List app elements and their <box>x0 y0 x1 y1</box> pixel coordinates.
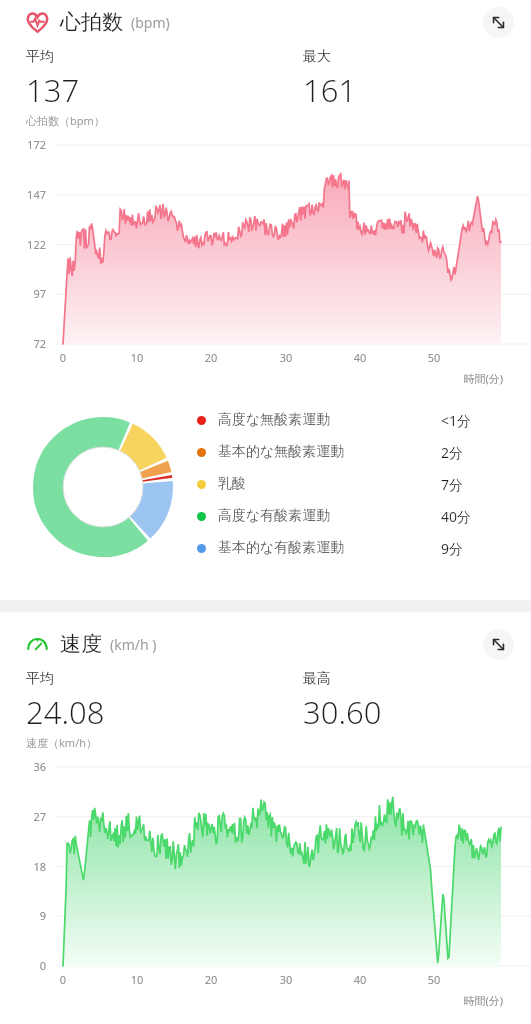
staticText: 30 <box>273 350 299 365</box>
staticText: 0 <box>50 350 76 365</box>
button[interactable]: 高度な無酸素運動 <box>197 404 497 436</box>
staticText: 時間(分) <box>0 993 503 1008</box>
staticText: 72 <box>0 336 46 351</box>
staticText: 基本的な無酸素運動 <box>218 443 345 461</box>
staticText: 30.60 <box>303 691 382 733</box>
staticText: 9分 <box>441 539 497 558</box>
button[interactable]: 基本的な無酸素運動 <box>197 436 497 468</box>
button[interactable]: 心拍数を拡大 <box>483 7 514 38</box>
staticText: 20 <box>198 972 224 987</box>
staticText: 30 <box>273 972 299 987</box>
staticText: 27 <box>0 809 46 824</box>
staticText: 7分 <box>441 475 497 494</box>
button[interactable]: 乳酸 <box>197 468 497 500</box>
staticText: 0 <box>50 972 76 987</box>
staticText: 2分 <box>441 443 497 462</box>
staticText: 最大 <box>303 48 331 66</box>
staticText: 0 <box>0 958 46 973</box>
staticText: 40 <box>347 350 373 365</box>
staticText: 36 <box>0 759 46 774</box>
button[interactable]: 速度を拡大 <box>483 629 514 660</box>
staticText: (km/h ) <box>110 635 157 654</box>
button[interactable]: 基本的な有酸素運動 <box>197 532 497 564</box>
staticText: 147 <box>0 187 46 202</box>
staticText: 10 <box>124 972 150 987</box>
staticText: 基本的な有酸素運動 <box>218 539 345 557</box>
staticText: 最高 <box>303 670 331 688</box>
staticText: 40 <box>347 972 373 987</box>
staticText: 高度な無酸素運動 <box>218 411 331 429</box>
staticText: 97 <box>0 286 46 301</box>
staticText: 50 <box>421 350 447 365</box>
staticText: 50 <box>421 972 447 987</box>
staticText: 161 <box>303 69 357 111</box>
staticText: 24.08 <box>26 691 105 733</box>
staticText: 時間(分) <box>0 371 503 386</box>
staticText: 137 <box>26 69 80 111</box>
staticText: 速度（km/h） <box>26 735 98 750</box>
staticText: 速度 <box>60 631 102 657</box>
staticText: <1分 <box>441 411 497 430</box>
staticText: 乳酸 <box>218 475 246 493</box>
staticText: 122 <box>0 237 46 252</box>
staticText: 平均 <box>26 670 54 688</box>
staticText: 18 <box>0 859 46 874</box>
staticText: (bpm) <box>131 13 170 32</box>
staticText: 心拍数 <box>60 9 123 35</box>
staticText: 10 <box>124 350 150 365</box>
staticText: 9 <box>0 908 46 923</box>
staticText: 172 <box>0 137 46 152</box>
staticText: 20 <box>198 350 224 365</box>
button[interactable]: 高度な有酸素運動 <box>197 500 497 532</box>
staticText: 高度な有酸素運動 <box>218 507 331 525</box>
staticText: 40分 <box>441 507 497 526</box>
staticText: 平均 <box>26 48 54 66</box>
staticText: 心拍数（bpm） <box>26 113 105 128</box>
